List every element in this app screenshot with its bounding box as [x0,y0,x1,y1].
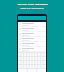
button[interactable] [19,27,45,31]
button[interactable] [19,32,45,36]
button[interactable] [19,22,45,26]
button[interactable] [19,42,45,46]
button[interactable] [19,37,45,41]
button[interactable] [18,52,46,72]
staticText: made for developers [20,6,44,9]
button[interactable] [19,47,45,51]
staticText: The only video messaging [17,2,48,5]
